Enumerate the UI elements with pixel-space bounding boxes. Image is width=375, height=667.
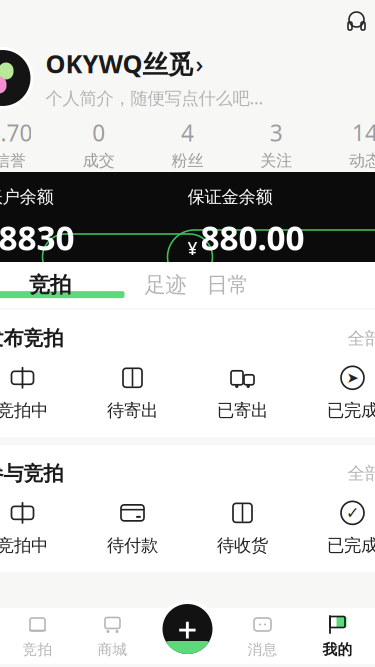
button[interactable]: 竞拍: [0, 273, 124, 297]
staticText: 消息: [247, 640, 277, 658]
button[interactable]: 客服: [339, 6, 373, 40]
button[interactable]: 3: [232, 120, 321, 168]
button[interactable]: 竞拍中: [0, 500, 77, 556]
staticText: 3: [270, 118, 283, 148]
button[interactable]: 待付款: [77, 500, 187, 556]
staticText: 8830: [0, 215, 74, 260]
button[interactable]: 4.70: [0, 120, 54, 168]
staticText: 我的: [322, 640, 352, 658]
staticText: 足迹: [144, 272, 186, 298]
staticText: 成交: [83, 151, 115, 170]
button[interactable]: 账户余额: [0, 186, 187, 260]
button[interactable]: 待收货: [187, 500, 297, 556]
button[interactable]: 竞拍中: [0, 365, 77, 421]
button[interactable]: 4: [143, 120, 232, 168]
staticText: 关注: [260, 151, 292, 170]
staticText: 日常: [206, 272, 248, 298]
button[interactable]: 消息: [225, 610, 300, 662]
staticText: 已完成: [327, 400, 375, 421]
staticText: ¥: [187, 237, 197, 260]
staticText: ✓: [346, 504, 359, 522]
staticText: 待寄出: [107, 400, 158, 421]
staticText: 参与竞拍: [0, 461, 63, 486]
staticText: 4.70: [0, 118, 32, 148]
button[interactable]: 保证金余额: [187, 186, 375, 260]
button[interactable]: ✓: [297, 500, 375, 556]
staticText: OKYWQ丝觅: [45, 47, 192, 80]
staticText: 竞拍中: [0, 400, 48, 421]
staticText: 粉丝: [171, 151, 203, 170]
button[interactable]: 14: [321, 120, 375, 168]
button[interactable]: 头像: [0, 47, 33, 109]
staticText: 已完成: [327, 535, 375, 556]
button[interactable]: ➤: [297, 365, 375, 421]
staticText: 4: [181, 118, 194, 148]
staticText: 已寄出: [217, 400, 268, 421]
staticText: 全部: [347, 463, 375, 484]
staticText: 个人简介，随便写点什么吧…: [45, 86, 263, 109]
button[interactable]: OKYWQ丝觅: [45, 47, 203, 80]
staticText: ➤: [346, 369, 358, 386]
button[interactable]: 待寄出: [77, 365, 187, 421]
staticText: 全部: [347, 328, 375, 349]
staticText: 14: [352, 118, 375, 148]
staticText: 竞拍中: [0, 535, 48, 556]
staticText: 待收货: [217, 535, 268, 556]
button[interactable]: 我的: [300, 610, 375, 662]
button[interactable]: 发布: [158, 600, 216, 658]
staticText: 商城: [97, 640, 127, 658]
button[interactable]: 商城: [75, 610, 150, 662]
staticText: 待付款: [107, 535, 158, 556]
staticText: 保证金余额: [187, 186, 272, 207]
staticText: +: [177, 606, 197, 652]
button[interactable]: 竞拍: [0, 610, 75, 662]
button[interactable]: 全部: [347, 326, 375, 351]
staticText: 竞拍: [22, 640, 52, 658]
staticText: 竞拍: [29, 272, 71, 298]
button[interactable]: 已寄出: [187, 365, 297, 421]
button[interactable]: 足迹: [144, 273, 186, 297]
button[interactable]: 全部: [347, 461, 375, 486]
staticText: 信誉: [0, 151, 26, 170]
staticText: ›: [195, 48, 203, 79]
button[interactable]: 日常: [206, 273, 248, 297]
button[interactable]: 0: [54, 120, 143, 168]
staticText: 动态: [349, 151, 375, 170]
staticText: 发布竞拍: [0, 326, 63, 351]
staticText: 880.00: [200, 215, 304, 260]
staticText: 账户余额: [0, 186, 53, 207]
staticText: 0: [92, 118, 105, 148]
